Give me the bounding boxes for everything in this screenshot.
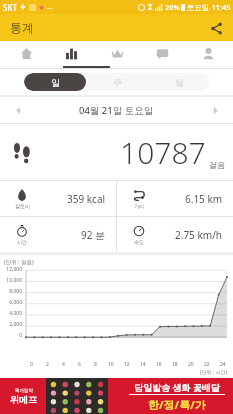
staticText: 2 [46,361,49,368]
staticText: 12 [124,361,130,368]
staticText: 8,000 [0,288,22,295]
staticText: 6.15 km [185,192,223,206]
staticText: 4,000 [0,310,22,317]
staticText: 10 [108,361,114,368]
button[interactable]: 칼로리 [0,181,116,216]
staticText: SKT [3,2,17,13]
button[interactable]: Statistics [51,41,91,66]
staticText: (단위 : 시간) [0,369,227,376]
staticText: 일 [51,77,60,88]
button[interactable]: Chat [142,41,182,66]
staticText: 2,000 [0,321,22,328]
staticText: 20 [188,361,194,368]
button[interactable]: Share [205,17,227,39]
staticText: 10,000 [0,277,22,284]
button[interactable]: 거리 [117,181,233,216]
staticText: 26% [165,2,180,12]
staticText: 92 분 [81,228,106,242]
staticText: 토요일 11:45 [187,2,231,12]
staticText: 8 [94,361,97,368]
staticText: 속도 [134,239,144,245]
button[interactable]: Home [6,41,46,66]
staticText: 한/정/특/가 [148,397,206,412]
staticText: 0 [0,332,22,339]
staticText: 거리 [134,203,144,209]
staticText: 특가임박 [15,388,33,394]
staticText: 0 [30,361,33,368]
staticText: 통계 [10,20,34,35]
staticText: 12,000 [0,266,22,273]
staticText: 주 [113,77,122,88]
staticText: 걸음 [209,160,225,170]
staticText: 22 [204,361,210,368]
staticText: 칼로리 [15,203,30,209]
staticText: 당일발송 생화 꽃배달 [134,381,220,393]
button[interactable]: 주 [86,73,148,91]
button[interactable]: Profile [188,41,228,66]
staticText: 16 [156,361,162,368]
button[interactable]: 속도 [117,217,233,252]
button[interactable]: Ranking [97,41,137,66]
staticText: 6 [78,361,81,368]
button[interactable]: Next day [205,100,225,120]
staticText: ... [47,2,53,12]
staticText: 359 kcal [67,192,106,206]
staticText: 2.75 km/h [175,228,223,242]
staticText: 4 [62,361,65,368]
staticText: 14 [140,361,146,368]
button[interactable]: Previous day [8,100,28,120]
button[interactable]: 시간 [0,217,116,252]
staticText: 시간 [17,239,27,245]
staticText: 24 [220,361,226,368]
staticText: 04월 21일 토요일 [79,104,154,117]
staticText: 월 [175,77,184,88]
staticText: (단위 : 걸음) [4,258,34,266]
button[interactable]: Advertisement [0,378,233,414]
staticText: 위메프 [10,394,37,405]
button[interactable]: 일 [24,73,86,91]
staticText: 18 [172,361,178,368]
button[interactable]: 월 [148,73,210,91]
staticText: 6,000 [0,299,22,306]
button[interactable]: 10787 [0,124,233,180]
staticText: 10787 [120,132,206,173]
